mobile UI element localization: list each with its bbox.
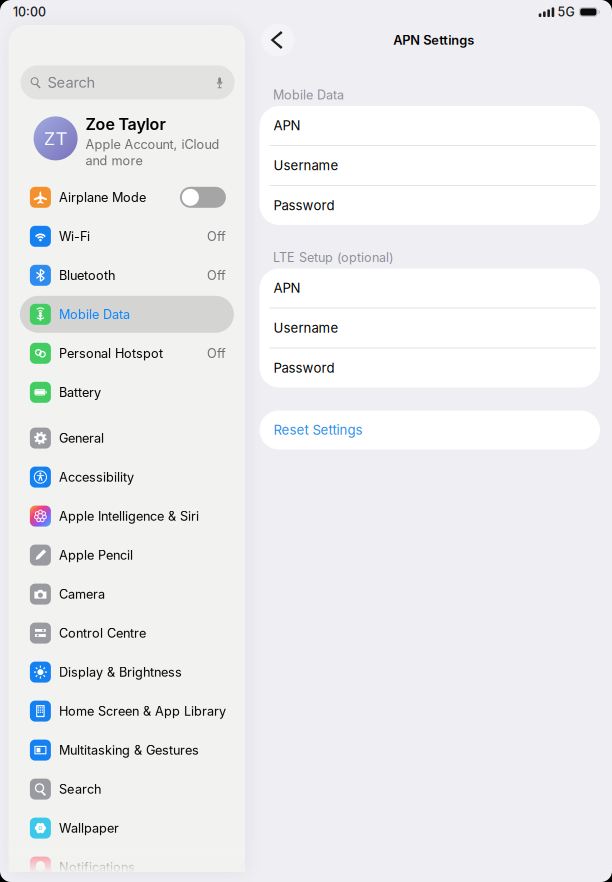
staticText: Off (207, 346, 226, 361)
button[interactable]: Airplane Mode (20, 179, 234, 216)
button[interactable]: General (20, 420, 234, 457)
staticText: Wallpaper (59, 820, 119, 836)
staticText: Display & Brightness (59, 664, 182, 680)
button[interactable]: Notifications (20, 849, 234, 882)
staticText: Zoe Taylor (86, 114, 166, 134)
button[interactable]: APN (259, 268, 600, 307)
staticText: Off (207, 229, 226, 244)
staticText: 5G (557, 4, 574, 19)
button[interactable]: APN (259, 106, 600, 145)
button[interactable]: Reset Settings (259, 410, 600, 449)
button[interactable]: Bluetooth (20, 257, 234, 294)
staticText: Reset Settings (273, 422, 362, 438)
button[interactable]: Username (259, 308, 600, 347)
staticText: Password (273, 197, 334, 213)
staticText: Multitasking & Gestures (59, 742, 199, 758)
staticText: Home Screen & App Library (59, 703, 226, 719)
button[interactable]: Camera (20, 576, 234, 613)
button[interactable]: Password (259, 348, 600, 387)
button[interactable]: Wallpaper (20, 810, 234, 847)
button[interactable]: Display & Brightness (20, 654, 234, 691)
staticText: APN (273, 117, 300, 133)
button[interactable]: Control Centre (20, 615, 234, 652)
button[interactable]: Personal Hotspot (20, 335, 234, 372)
staticText: Control Centre (59, 625, 146, 641)
button[interactable]: Home Screen & App Library (20, 693, 234, 730)
button[interactable]: Search (20, 771, 234, 808)
staticText: Airplane Mode (59, 190, 146, 205)
staticText: LTE Setup (optional) (273, 250, 394, 265)
staticText: and more (86, 153, 143, 168)
staticText: Username (273, 157, 338, 173)
staticText: APN Settings (393, 32, 474, 48)
staticText: Mobile Data (59, 307, 130, 322)
staticText: ZT (44, 127, 68, 150)
staticText: Bluetooth (59, 268, 115, 283)
button[interactable]: Mobile Data (20, 296, 234, 333)
staticText: APN (273, 280, 300, 296)
button[interactable]: ZT (9, 99, 245, 167)
button[interactable]: Back (261, 23, 294, 56)
staticText: Notifications (59, 859, 135, 875)
staticText: Apple Pencil (59, 547, 133, 563)
button[interactable]: Username (259, 146, 600, 185)
staticText: 10:00 (13, 4, 46, 19)
staticText: Battery (59, 385, 101, 400)
button[interactable]: Battery (20, 374, 234, 411)
staticText: Wi-Fi (59, 229, 90, 244)
button[interactable]: Password (259, 186, 600, 225)
staticText: General (59, 430, 104, 446)
staticText: Apple Intelligence & Siri (59, 508, 199, 524)
staticText: Search (48, 73, 96, 91)
button[interactable]: Wi-Fi (20, 218, 234, 255)
button[interactable]: Accessibility (20, 459, 234, 496)
button[interactable]: Multitasking & Gestures (20, 732, 234, 769)
staticText: Apple Account, iCloud (86, 137, 220, 152)
staticText: Search (59, 781, 101, 797)
staticText: Mobile Data (273, 87, 344, 102)
button[interactable]: Apple Intelligence & Siri (20, 498, 234, 535)
staticText: Password (273, 360, 334, 376)
staticText: Personal Hotspot (59, 346, 163, 361)
button[interactable]: Apple Pencil (20, 537, 234, 574)
staticText: Camera (59, 586, 105, 602)
staticText: Accessibility (59, 469, 134, 485)
staticText: Username (273, 320, 338, 336)
staticText: Off (207, 268, 226, 283)
